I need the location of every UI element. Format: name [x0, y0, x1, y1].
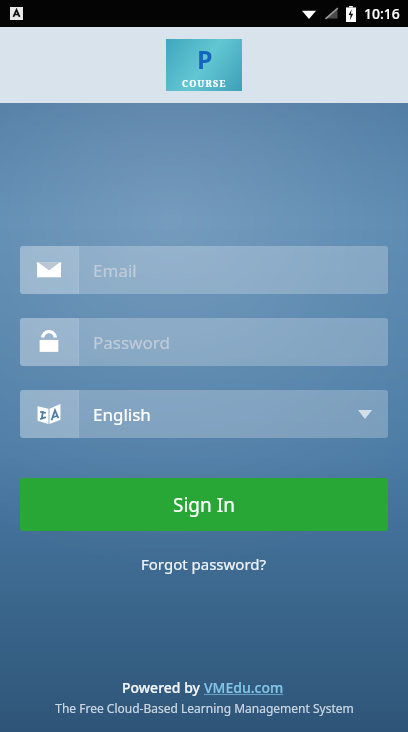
staticText: Sign In	[173, 492, 235, 518]
staticText: Powered by	[122, 678, 204, 697]
button[interactable]: Password	[20, 318, 388, 366]
staticText: P	[197, 42, 213, 76]
staticText: COURSE	[182, 77, 227, 89]
staticText: Email	[93, 259, 137, 282]
staticText: The Free Cloud-Based Learning Management…	[55, 700, 354, 716]
button[interactable]: Select language	[20, 390, 388, 438]
staticText: Forgot password?	[141, 554, 267, 574]
staticText: English	[93, 403, 151, 426]
button[interactable]: Forgot password?	[0, 548, 408, 580]
staticText: VMEdu.com	[204, 678, 287, 697]
button[interactable]: VMEdu.com	[204, 678, 287, 697]
staticText: 10:16	[364, 4, 400, 23]
staticText: Password	[93, 331, 170, 354]
button[interactable]: Sign In	[20, 478, 388, 531]
button[interactable]: Email	[20, 246, 388, 294]
